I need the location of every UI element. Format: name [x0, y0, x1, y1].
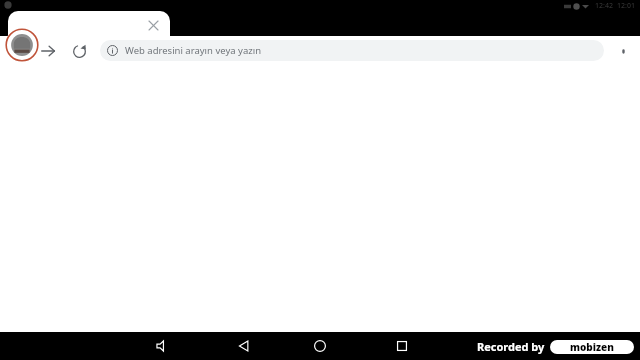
button[interactable]: Close tab: [8, 11, 170, 38]
button[interactable]: Profile: [5, 28, 39, 62]
button[interactable]: More options: [612, 40, 634, 62]
button[interactable]: Volume: [150, 334, 174, 358]
staticText: mobizen: [570, 340, 614, 354]
button[interactable]: Back: [232, 334, 256, 358]
button[interactable]: Forward: [36, 39, 60, 63]
button[interactable]: Reload: [67, 39, 91, 63]
staticText: Web adresini arayın veya yazın: [125, 44, 262, 57]
button[interactable]: Home: [308, 334, 332, 358]
staticText: 12:01: [617, 1, 635, 11]
button[interactable]: Web adresini arayın veya yazın: [100, 40, 604, 61]
button[interactable]: Recent apps: [390, 334, 414, 358]
staticText: 12:42: [595, 1, 613, 11]
button[interactable]: Close tab: [144, 16, 162, 34]
staticText: Recorded by: [477, 339, 545, 354]
